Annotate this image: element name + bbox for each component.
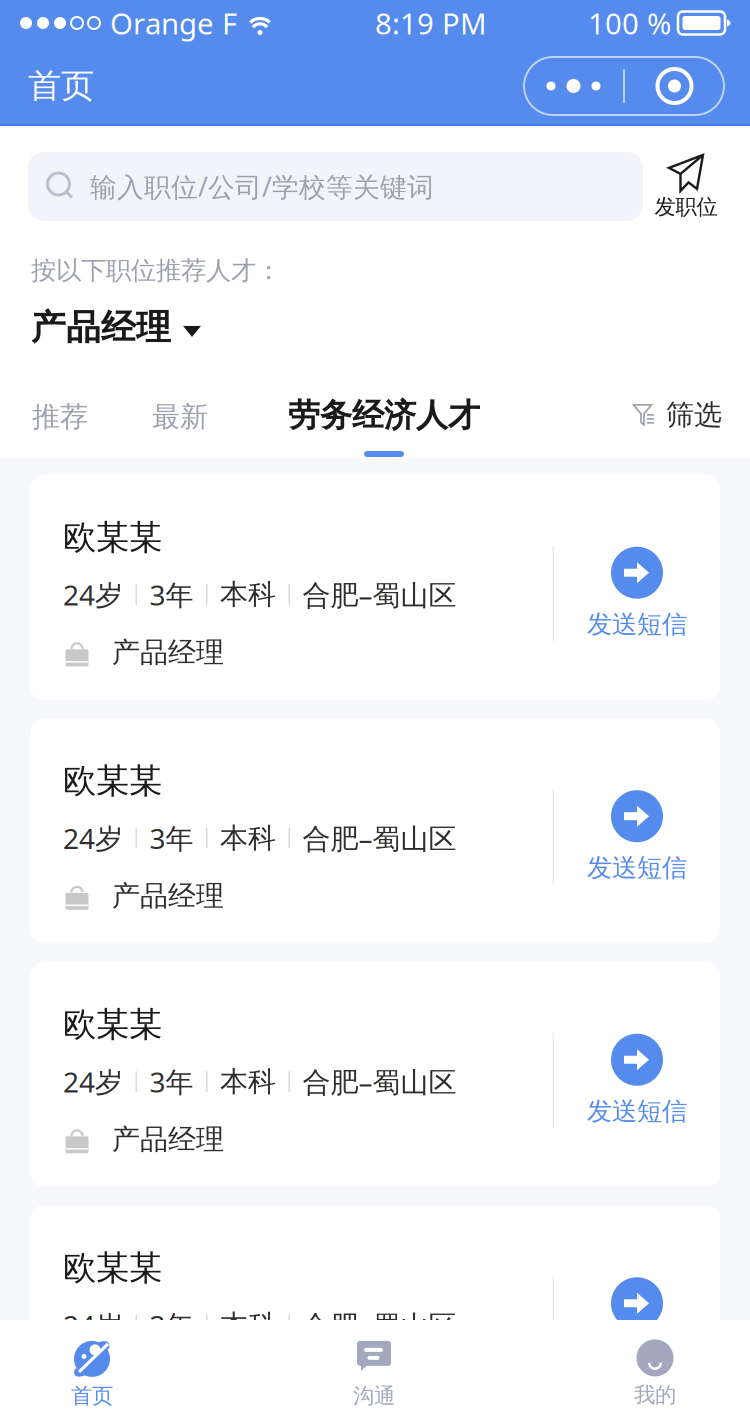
staticText: 按以下职位推荐人才： <box>31 255 281 286</box>
staticText: 合肥–蜀山区 <box>302 819 456 857</box>
staticText: 筛选 <box>666 398 722 432</box>
staticText: 劳务经济人才 <box>288 396 480 435</box>
staticText: 24岁 <box>63 1063 123 1100</box>
staticText: 欧某某 <box>63 517 162 558</box>
staticText: 推荐 <box>32 400 88 434</box>
button[interactable]: 首页 <box>0 1338 184 1409</box>
staticText: Orange F <box>110 3 237 42</box>
staticText: 产品经理 <box>112 879 224 913</box>
staticText: 合肥–蜀山区 <box>302 1306 456 1344</box>
staticText: 我的 <box>634 1382 676 1408</box>
button[interactable]: 输入职位/公司/学校等关键词 <box>28 152 643 221</box>
button[interactable]: 发职位 <box>643 153 729 220</box>
staticText: 本科 <box>220 1064 276 1099</box>
button[interactable]: 产品经理 <box>0 286 750 349</box>
staticText: 首页 <box>71 1383 113 1409</box>
staticText: 发职位 <box>654 194 717 220</box>
staticText: 沟通 <box>353 1383 395 1409</box>
staticText: 发送短信 <box>587 1339 687 1370</box>
staticText: 8:19 PM <box>375 3 487 42</box>
button[interactable]: 发送短信 <box>554 1277 720 1370</box>
button[interactable]: 劳务经济人才 <box>240 396 503 457</box>
staticText: 24岁 <box>63 1306 123 1344</box>
staticText: 发送短信 <box>587 609 687 640</box>
button[interactable]: 最新 <box>120 396 240 434</box>
staticText: 100 % <box>588 3 671 42</box>
button[interactable]: 发送短信 <box>554 790 720 883</box>
button[interactable]: 我的 <box>560 1339 750 1408</box>
staticText: 首页 <box>28 65 94 106</box>
button[interactable]: 发送短信 <box>554 1034 720 1127</box>
button[interactable]: 筛选 <box>632 396 750 432</box>
staticText: 产品经理 <box>112 635 224 669</box>
staticText: 产品经理 <box>112 1122 224 1157</box>
staticText: 欧某某 <box>63 760 162 801</box>
staticText: 本科 <box>220 821 276 855</box>
button[interactable]: 推荐 <box>0 396 120 434</box>
staticText: 3年 <box>149 1063 193 1100</box>
staticText: 24岁 <box>63 576 123 613</box>
staticText: 发送短信 <box>587 852 687 883</box>
staticText: 欧某某 <box>63 1004 162 1045</box>
staticText: 本科 <box>220 577 276 612</box>
staticText: 24岁 <box>63 819 123 857</box>
button[interactable]: 沟通 <box>184 1338 465 1409</box>
staticText: 最新 <box>152 400 208 434</box>
staticText: 输入职位/公司/学校等关键词 <box>90 169 434 204</box>
button[interactable]: More options <box>524 57 724 115</box>
staticText: 发送短信 <box>587 1096 687 1127</box>
staticText: 欧某某 <box>63 1248 162 1288</box>
staticText: 合肥–蜀山区 <box>302 576 456 613</box>
staticText: 本科 <box>220 1308 276 1342</box>
staticText: 3年 <box>149 819 193 857</box>
staticText: 合肥–蜀山区 <box>302 1063 456 1100</box>
staticText: 产品经理 <box>31 306 171 349</box>
button[interactable]: 发送短信 <box>554 547 720 640</box>
staticText: 3年 <box>149 1306 193 1344</box>
staticText: 3年 <box>149 576 193 613</box>
